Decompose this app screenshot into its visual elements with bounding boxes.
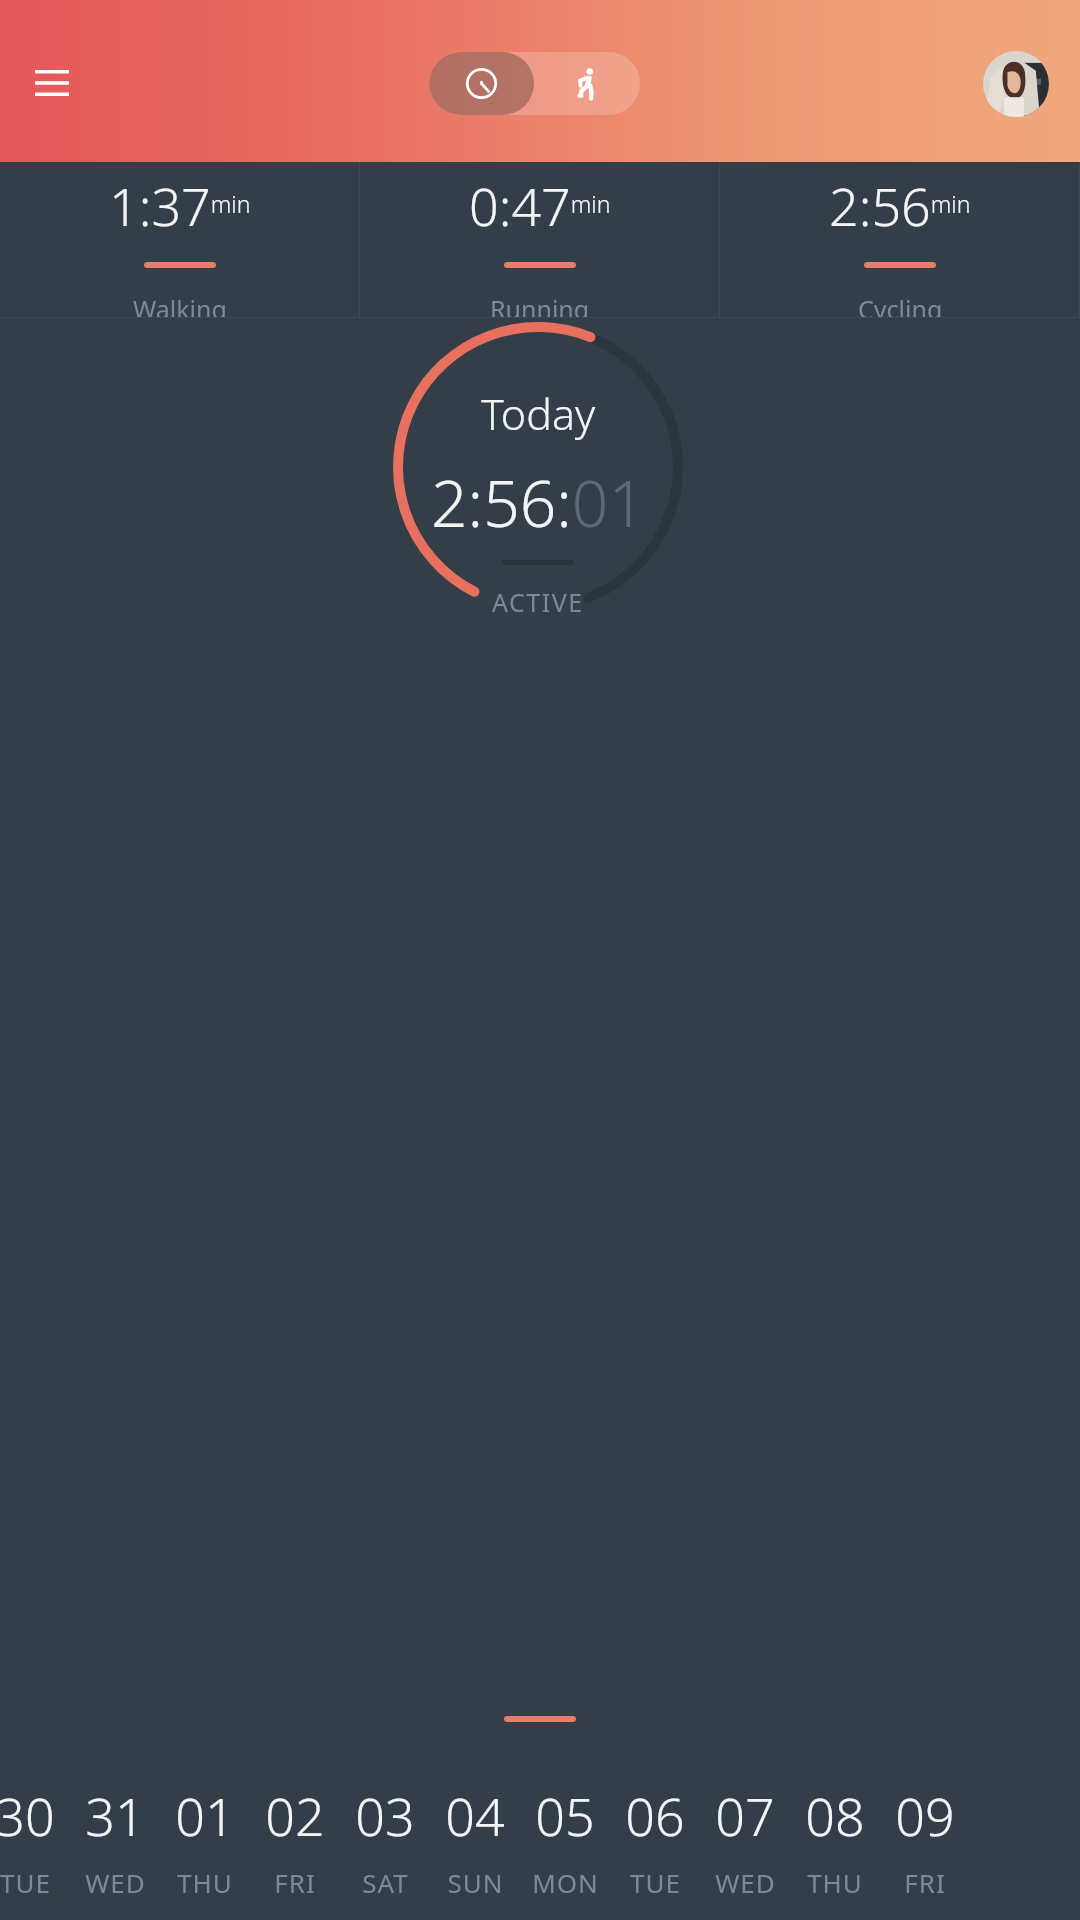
- staticText: Cycling: [858, 292, 943, 317]
- staticText: MON: [532, 1865, 599, 1900]
- staticText: SAT: [362, 1865, 409, 1900]
- staticText: 31: [85, 1780, 145, 1851]
- button[interactable]: 06: [610, 1780, 700, 1900]
- staticText: TUE: [0, 1865, 51, 1900]
- button[interactable]: 04: [430, 1780, 520, 1900]
- button[interactable]: 1:37min: [0, 162, 360, 317]
- staticText: 05: [535, 1780, 595, 1851]
- button[interactable]: 30: [0, 1780, 70, 1900]
- button[interactable]: Menu: [26, 57, 78, 109]
- button[interactable]: 0:47min: [360, 162, 720, 317]
- staticText: 02: [265, 1780, 325, 1851]
- staticText: 01: [175, 1780, 235, 1851]
- staticText: WED: [715, 1865, 776, 1900]
- staticText: 2:56:01: [431, 459, 645, 546]
- button[interactable]: Time view: [429, 52, 534, 115]
- staticText: Running: [490, 292, 590, 317]
- staticText: 03: [355, 1780, 415, 1851]
- staticText: 1:37min: [109, 170, 251, 241]
- staticText: 2:56min: [829, 170, 971, 241]
- button[interactable]: 2:56min: [720, 162, 1080, 317]
- staticText: ACTIVE: [492, 585, 584, 612]
- button[interactable]: 09: [880, 1780, 970, 1900]
- staticText: WED: [85, 1865, 146, 1900]
- staticText: 06: [625, 1780, 685, 1851]
- button[interactable]: 31: [70, 1780, 160, 1900]
- button[interactable]: 02: [250, 1780, 340, 1900]
- staticText: THU: [807, 1865, 863, 1900]
- staticText: SUN: [447, 1865, 504, 1900]
- button[interactable]: 07: [700, 1780, 790, 1900]
- button[interactable]: 03: [340, 1780, 430, 1900]
- staticText: Today: [481, 384, 596, 443]
- staticText: TUE: [630, 1865, 681, 1900]
- staticText: 04: [445, 1780, 505, 1851]
- staticText: FRI: [274, 1865, 316, 1900]
- staticText: THU: [177, 1865, 233, 1900]
- button[interactable]: 08: [790, 1780, 880, 1900]
- button[interactable]: 01: [160, 1780, 250, 1900]
- staticText: 0:47min: [469, 170, 611, 241]
- button[interactable]: Today: [393, 322, 683, 612]
- staticText: Walking: [133, 292, 227, 317]
- button[interactable]: Profile: [983, 51, 1049, 117]
- button[interactable]: Activity view: [534, 52, 640, 115]
- button[interactable]: 05: [520, 1780, 610, 1900]
- staticText: 09: [895, 1780, 955, 1851]
- staticText: 08: [805, 1780, 865, 1851]
- staticText: 07: [715, 1780, 775, 1851]
- staticText: 30: [0, 1780, 55, 1851]
- staticText: FRI: [904, 1865, 946, 1900]
